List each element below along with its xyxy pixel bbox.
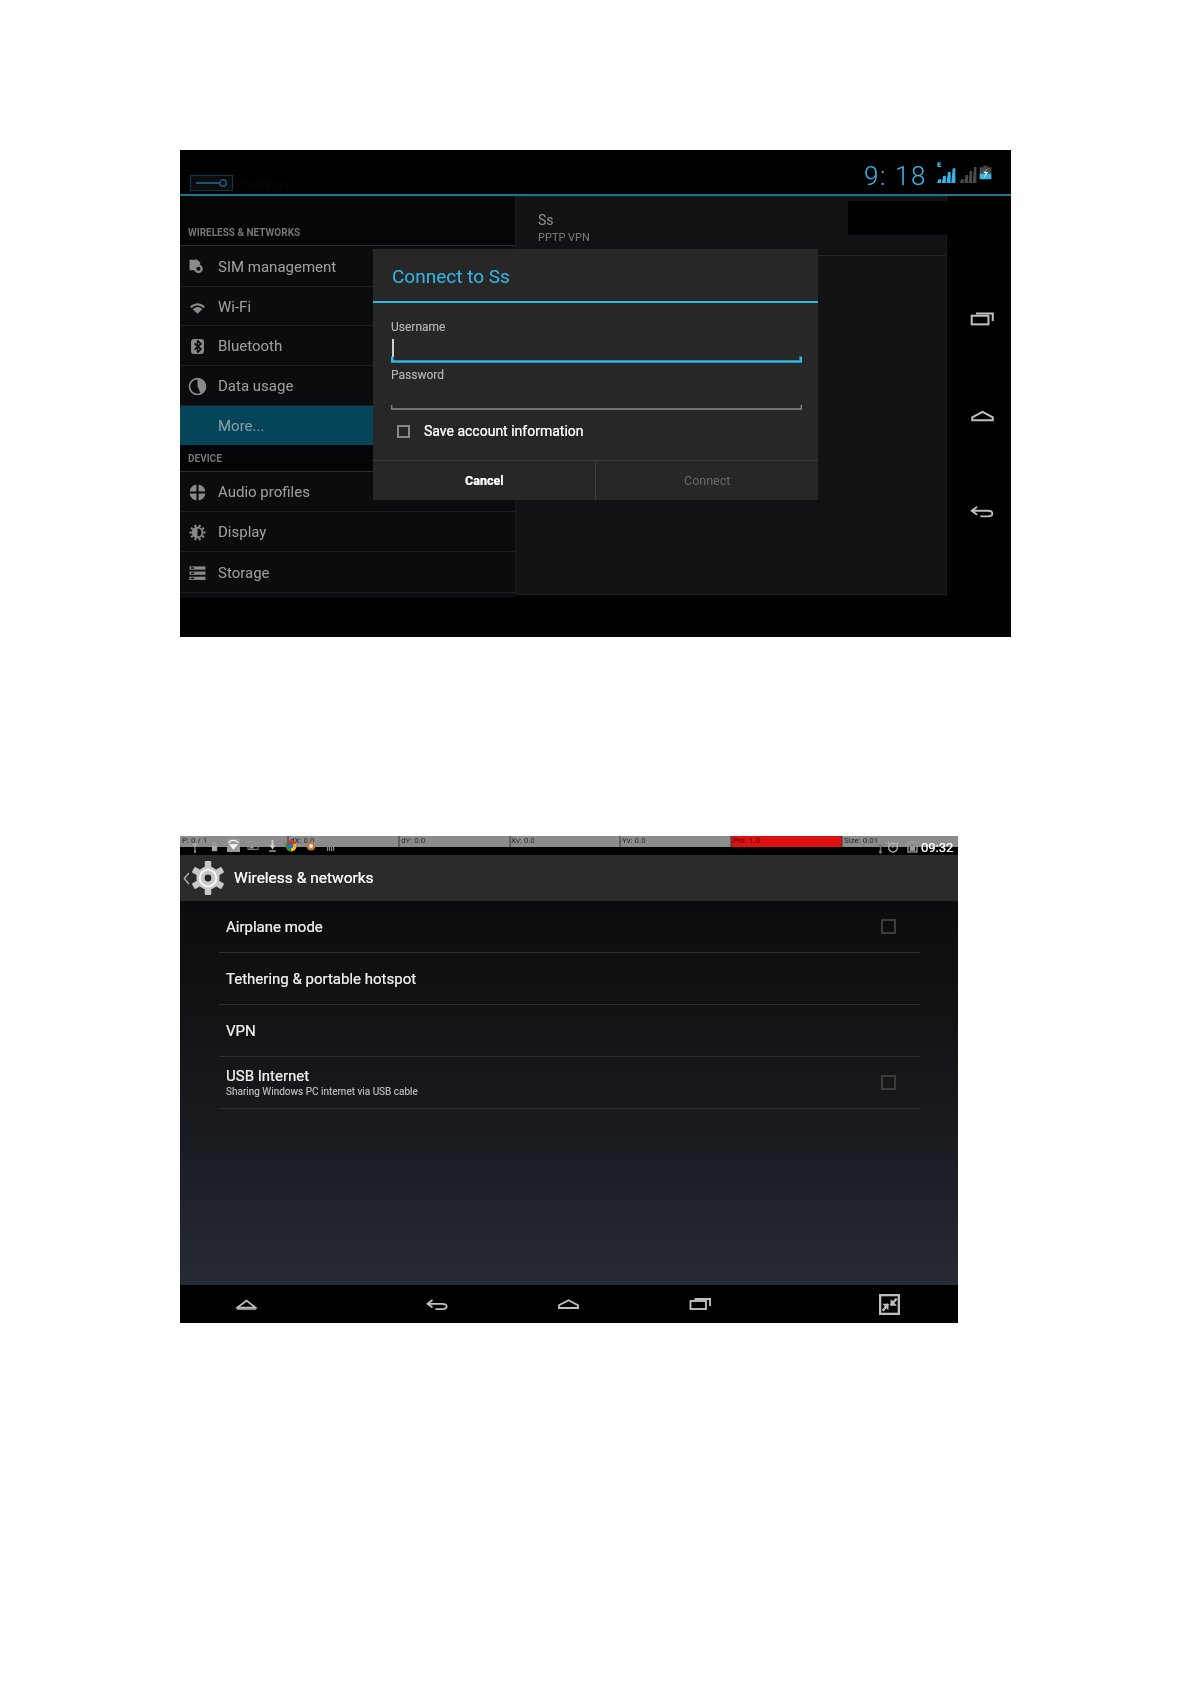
button[interactable]: USB Internet [180, 1057, 958, 1109]
staticText: Password [391, 368, 445, 382]
staticText: 9: 18 [864, 161, 928, 191]
staticText: dY: 0.0 [401, 836, 426, 845]
staticText: SIM management [218, 258, 337, 276]
button[interactable]: More... [180, 406, 515, 445]
button[interactable]: Data usage [180, 366, 515, 406]
button[interactable]: Storage [180, 552, 515, 593]
button[interactable]: Back [954, 491, 1011, 531]
button[interactable]: Recent apps [954, 299, 1011, 339]
staticText: Wi-Fi [218, 298, 252, 316]
staticText: Display [218, 523, 267, 541]
button[interactable]: Audio profiles [180, 472, 515, 512]
staticText: dX: 0.0 [290, 836, 315, 845]
staticText: Prs: 1.0 [733, 836, 760, 845]
button[interactable]: Wi-Fi [180, 287, 515, 326]
button[interactable]: Back [415, 1285, 459, 1323]
staticText: Sharing Windows PC internet via USB cabl… [226, 1086, 418, 1098]
staticText: Cancel [465, 473, 504, 488]
staticText: Bluetooth [218, 337, 283, 355]
staticText: Username [391, 320, 446, 334]
staticText: Yv: 0.0 [622, 836, 646, 845]
staticText: Xv: 0.0 [511, 836, 535, 845]
staticText: Wireless & networks [234, 869, 374, 887]
button[interactable] [180, 855, 231, 901]
button[interactable]: SIM management [180, 246, 515, 287]
staticText: Size: 0.01 [844, 836, 879, 845]
button[interactable]: Display [180, 512, 515, 552]
staticText: Ss [538, 212, 554, 228]
staticText: 09:32 [921, 840, 954, 855]
button[interactable]: Resize [867, 1285, 911, 1323]
staticText: More... [218, 417, 265, 435]
staticText: Audio profiles [218, 483, 310, 501]
staticText: Airplane mode [226, 918, 323, 936]
staticText: VPN [226, 1022, 256, 1040]
staticText: Storage [218, 564, 270, 582]
staticText: DEVICE [188, 453, 222, 465]
button[interactable]: Menu [224, 1285, 268, 1323]
button[interactable]: Tethering & portable hotspot [180, 953, 958, 1005]
staticText: P: 0 / 1 [182, 836, 208, 845]
staticText: USB Internet [226, 1067, 310, 1085]
button[interactable]: VPN [180, 1005, 958, 1057]
staticText: Connect to Ss [392, 265, 510, 287]
staticText: PPTP VPN [538, 231, 590, 244]
button[interactable]: Recent apps [678, 1285, 722, 1323]
button[interactable]: Home [546, 1285, 590, 1323]
button[interactable]: Cancel [373, 461, 596, 500]
button[interactable]: Airplane mode [180, 901, 958, 953]
staticText: WIRELESS & NETWORKS [188, 227, 301, 239]
staticText: Data usage [218, 377, 294, 395]
button[interactable]: Save account information [391, 417, 584, 445]
staticText: Tethering & portable hotspot [226, 970, 417, 988]
staticText: Save account information [424, 423, 584, 439]
button[interactable]: Bluetooth [180, 326, 515, 366]
button[interactable]: Home [954, 396, 1011, 436]
staticText: Connect [684, 473, 731, 488]
button[interactable]: Connect [596, 461, 818, 500]
